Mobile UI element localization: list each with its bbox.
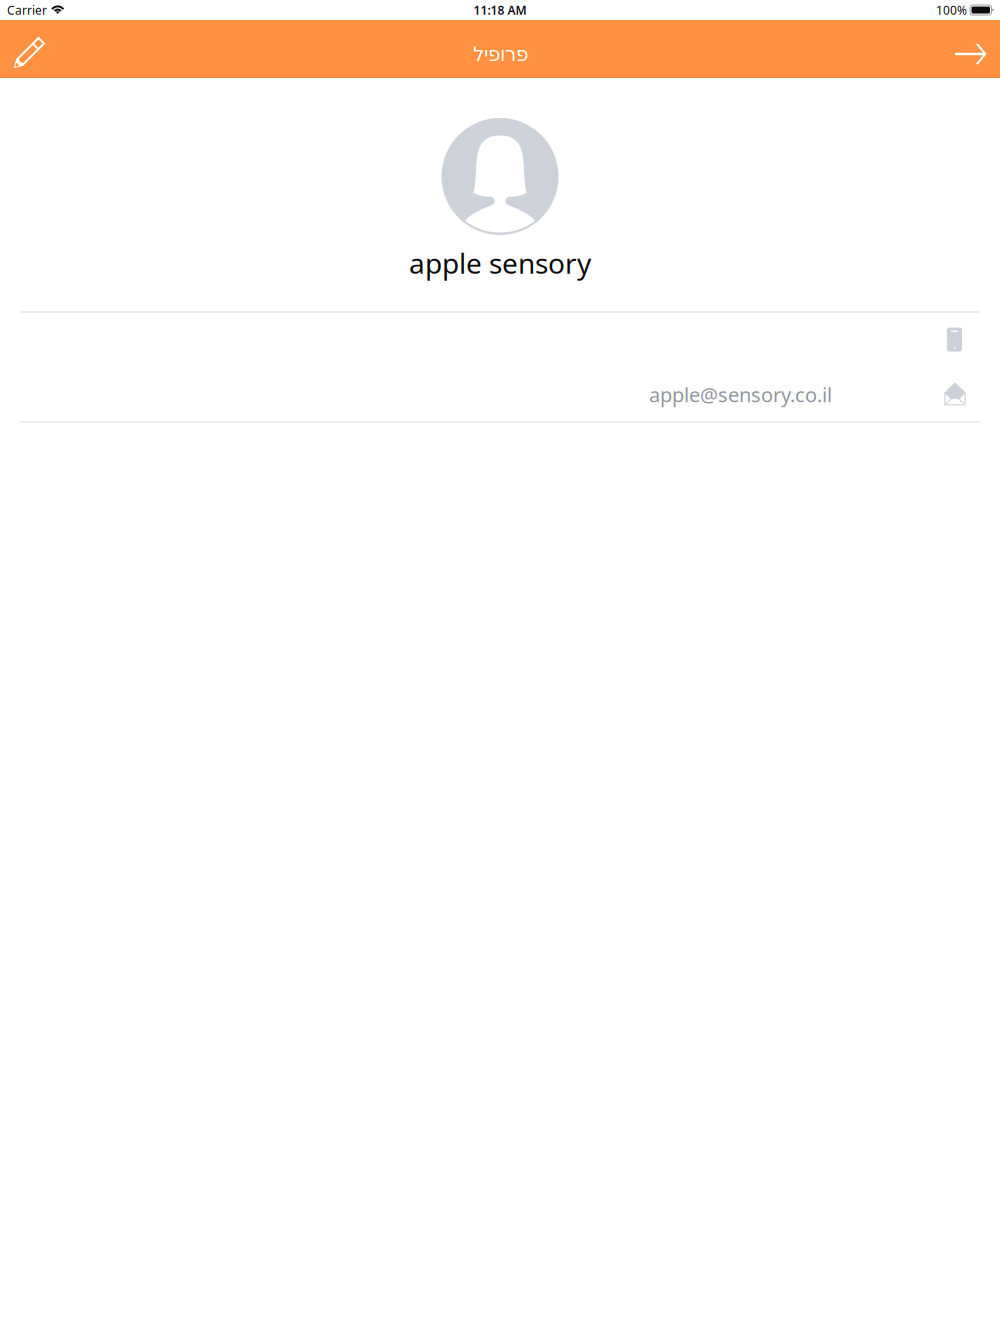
- staticText: פרופיל: [472, 43, 527, 65]
- staticText: 100%: [936, 2, 967, 18]
- button[interactable]: Edit profile: [0, 20, 58, 78]
- button[interactable]: Phone number: [0, 312, 1000, 367]
- button[interactable]: apple@sensory.co.il: [0, 367, 1000, 422]
- button[interactable]: Continue: [942, 20, 1000, 78]
- staticText: Carrier: [7, 2, 47, 18]
- staticText: 11:18 AM: [473, 2, 526, 18]
- staticText: apple sensory: [409, 244, 591, 282]
- staticText: apple@sensory.co.il: [649, 381, 832, 408]
